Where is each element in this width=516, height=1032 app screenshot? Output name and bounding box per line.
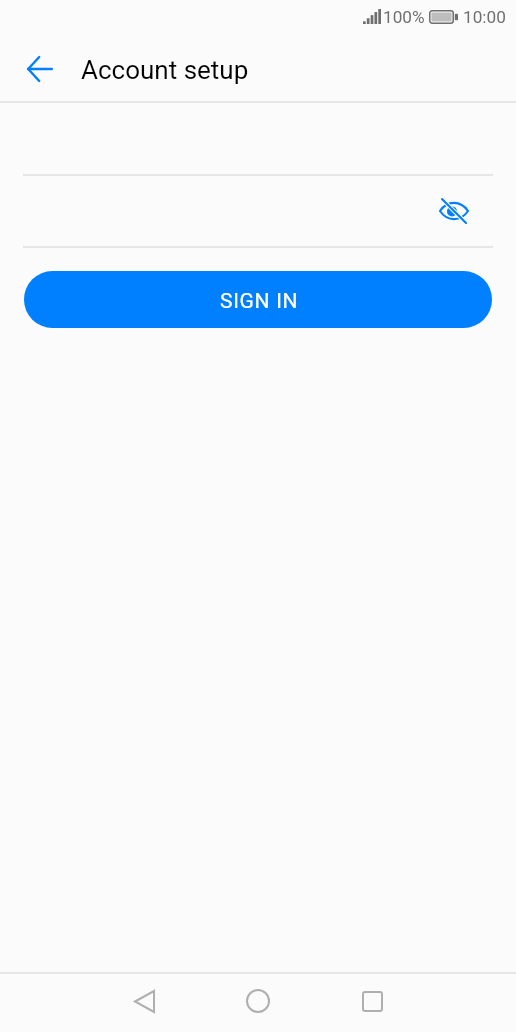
button[interactable]: Show password bbox=[430, 187, 478, 235]
button[interactable]: SIGN IN bbox=[24, 271, 492, 328]
staticText: 100% bbox=[383, 7, 425, 27]
staticText: 10:00 bbox=[463, 7, 506, 27]
button[interactable]: Password field bbox=[23, 190, 493, 248]
button[interactable]: Back bbox=[113, 972, 175, 1030]
button[interactable]: Navigate up bbox=[14, 43, 66, 95]
button[interactable]: Recent apps bbox=[341, 972, 403, 1030]
button[interactable]: Home bbox=[227, 972, 289, 1030]
button[interactable]: Email address field bbox=[23, 118, 493, 176]
staticText: SIGN IN bbox=[220, 289, 299, 314]
staticText: Account setup bbox=[81, 55, 249, 85]
